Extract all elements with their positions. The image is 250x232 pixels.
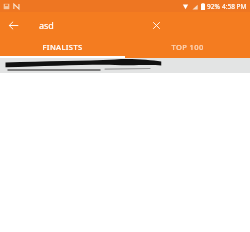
staticText: FINALISTS xyxy=(42,42,83,52)
staticText: TOP 100 xyxy=(171,42,204,52)
staticText: 92% xyxy=(207,2,220,11)
button[interactable]: TOP 100 xyxy=(125,38,250,56)
button[interactable]: FINALISTS xyxy=(0,38,125,56)
staticText: 4:58 PM xyxy=(222,2,247,11)
button[interactable] xyxy=(0,58,250,73)
button[interactable]: Navigate up xyxy=(0,12,26,38)
staticText: asd xyxy=(39,19,54,31)
button[interactable]: Clear search xyxy=(143,12,169,38)
